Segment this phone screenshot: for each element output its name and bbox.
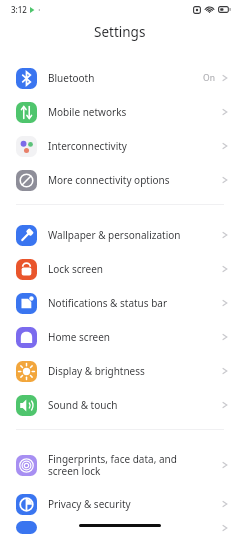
button[interactable]: Home screen bbox=[0, 320, 240, 354]
button[interactable]: Display & brightness bbox=[0, 354, 240, 388]
button[interactable]: Mobile networks bbox=[0, 95, 240, 129]
button[interactable]: Lock screen bbox=[0, 252, 240, 286]
staticText: Notifications & status bar bbox=[48, 296, 222, 310]
staticText: Fingerprints, face data, and screen lock bbox=[48, 452, 222, 478]
staticText: Bluetooth bbox=[48, 71, 203, 85]
staticText: Display & brightness bbox=[48, 364, 222, 378]
staticText: Wallpaper & personalization bbox=[48, 228, 222, 242]
staticText: Settings bbox=[94, 23, 146, 41]
staticText: 3:12 bbox=[11, 4, 27, 15]
staticText: On bbox=[203, 72, 215, 84]
staticText: Privacy & security bbox=[48, 497, 222, 511]
staticText: Interconnectivity bbox=[48, 139, 222, 153]
staticText: Mobile networks bbox=[48, 105, 222, 119]
button[interactable]: Notifications & status bar bbox=[0, 286, 240, 320]
button[interactable]: Bluetooth bbox=[0, 61, 240, 95]
staticText: More connectivity options bbox=[48, 173, 222, 187]
button[interactable]: Fingerprints, face data, and screen lock bbox=[0, 443, 240, 487]
staticText bbox=[48, 521, 222, 534]
button[interactable]: Wallpaper & personalization bbox=[0, 218, 240, 252]
button[interactable]: Interconnectivity bbox=[0, 129, 240, 163]
staticText: Sound & touch bbox=[48, 398, 222, 412]
button[interactable]: More connectivity options bbox=[0, 163, 240, 197]
staticText: Home screen bbox=[48, 330, 222, 344]
staticText: Lock screen bbox=[48, 262, 222, 276]
button[interactable]: Sound & touch bbox=[0, 388, 240, 422]
button[interactable] bbox=[0, 521, 240, 534]
button[interactable]: Privacy & security bbox=[0, 487, 240, 521]
